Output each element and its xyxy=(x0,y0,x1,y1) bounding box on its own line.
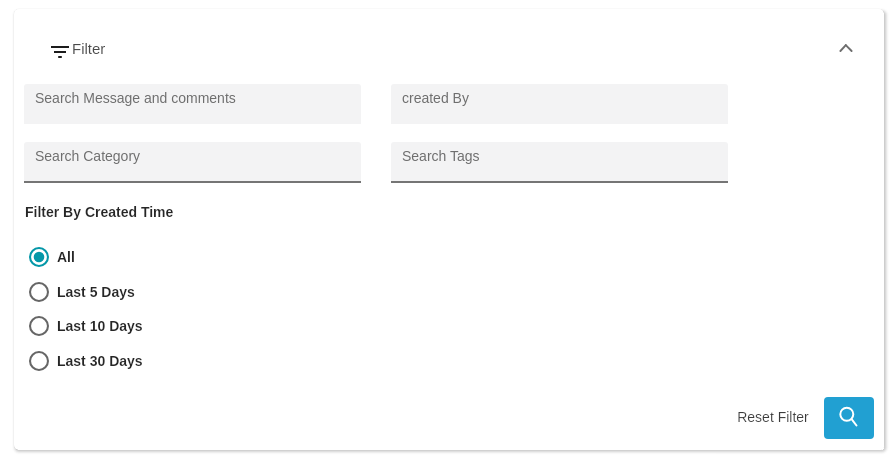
button[interactable]: Filter xyxy=(44,34,112,68)
staticText: Search Message and comments xyxy=(35,90,236,106)
staticText: Filter xyxy=(72,40,106,57)
staticText: Last 5 Days xyxy=(57,284,135,300)
staticText: Search Tags xyxy=(402,148,480,164)
button[interactable]: All xyxy=(24,242,224,272)
staticText: Filter By Created Time xyxy=(25,204,174,220)
staticText: Reset Filter xyxy=(737,409,809,425)
staticText: Search Category xyxy=(35,148,141,164)
button[interactable]: created By xyxy=(391,84,728,124)
button[interactable]: Search Tags xyxy=(391,142,728,181)
button[interactable]: Search Message and comments xyxy=(24,84,361,124)
button[interactable]: Last 30 Days xyxy=(24,346,224,376)
button[interactable]: Last 5 Days xyxy=(24,277,224,307)
staticText: Last 30 Days xyxy=(57,353,143,369)
button[interactable]: Search Category xyxy=(24,142,361,181)
staticText: Last 10 Days xyxy=(57,318,143,334)
button[interactable]: Search xyxy=(824,397,874,439)
button[interactable]: Last 10 Days xyxy=(24,311,224,341)
staticText: created By xyxy=(402,90,469,106)
button[interactable]: Collapse filter section xyxy=(828,30,864,66)
button[interactable]: Reset Filter xyxy=(731,404,815,430)
staticText: All xyxy=(57,249,75,265)
